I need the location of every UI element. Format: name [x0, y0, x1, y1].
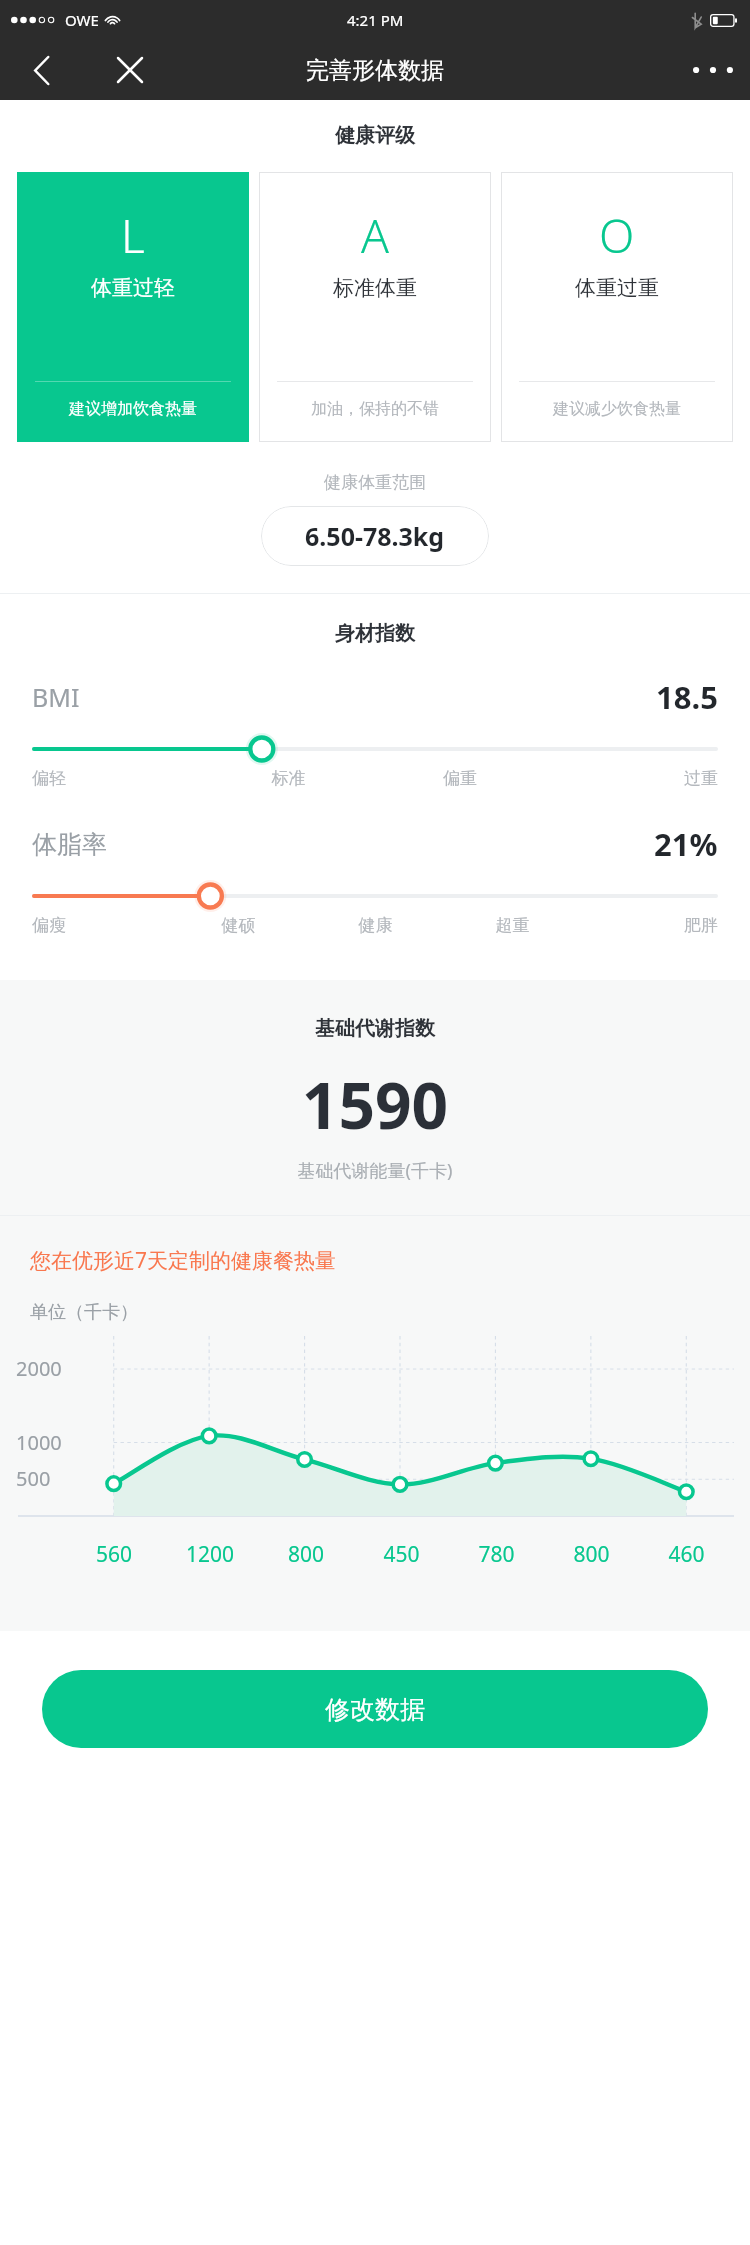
staticText: O: [599, 204, 635, 267]
staticText: 偏重: [374, 768, 546, 789]
staticText: 450: [354, 1540, 449, 1569]
staticText: 18.5: [656, 676, 718, 718]
button[interactable]: Back: [13, 42, 69, 98]
staticText: 健康: [307, 915, 444, 936]
staticText: 身材指数: [0, 621, 750, 646]
staticText: 500: [16, 1465, 51, 1492]
button[interactable]: Close: [102, 42, 158, 98]
button[interactable]: O: [501, 172, 733, 442]
button[interactable]: More options: [684, 41, 742, 99]
staticText: 标准: [203, 768, 374, 789]
button[interactable]: 体脂率 slider: [32, 879, 718, 913]
staticText: 加油，保持的不错: [311, 399, 439, 419]
staticText: 肥胖: [581, 915, 718, 936]
staticText: A: [361, 204, 389, 267]
staticText: 建议增加饮食热量: [69, 399, 197, 419]
staticText: 4:21 PM: [347, 10, 404, 30]
staticText: 标准体重: [333, 275, 417, 301]
staticText: OWE: [65, 10, 99, 30]
staticText: 460: [639, 1540, 734, 1569]
staticText: 过重: [546, 768, 718, 789]
staticText: 21%: [654, 823, 718, 865]
staticText: 基础代谢能量(千卡): [0, 1158, 750, 1183]
staticText: 超重: [444, 915, 581, 936]
staticText: 单位（千卡）: [30, 1301, 138, 1324]
staticText: 6.50-78.3kg: [305, 519, 445, 553]
button[interactable]: BMI slider: [32, 732, 718, 766]
staticText: 800: [258, 1540, 354, 1569]
staticText: BMI: [32, 680, 80, 714]
staticText: 完善形体数据: [306, 56, 444, 85]
staticText: 体重过轻: [91, 275, 175, 301]
staticText: 1000: [16, 1429, 62, 1456]
staticText: 560: [66, 1540, 162, 1569]
staticText: 您在优形近7天定制的健康餐热量: [30, 1246, 337, 1275]
staticText: 偏轻: [32, 768, 203, 789]
staticText: 体重过重: [575, 275, 659, 301]
staticText: 基础代谢指数: [0, 1016, 750, 1041]
staticText: 建议减少饮食热量: [553, 399, 681, 419]
staticText: 健硕: [170, 915, 307, 936]
button[interactable]: 修改数据: [42, 1670, 708, 1748]
staticText: 健康评级: [0, 123, 750, 148]
staticText: 800: [544, 1540, 639, 1569]
staticText: 体脂率: [32, 829, 107, 860]
staticText: 1200: [162, 1540, 258, 1569]
staticText: 2000: [16, 1355, 62, 1382]
staticText: L: [121, 204, 145, 267]
button[interactable]: L: [17, 172, 249, 442]
staticText: 修改数据: [325, 1694, 425, 1725]
staticText: 健康体重范围: [0, 472, 750, 493]
staticText: 1590: [0, 1061, 750, 1148]
button[interactable]: A: [259, 172, 491, 442]
staticText: 偏瘦: [32, 915, 170, 936]
button[interactable]: 6.50-78.3kg: [261, 506, 489, 566]
staticText: 780: [449, 1540, 544, 1569]
